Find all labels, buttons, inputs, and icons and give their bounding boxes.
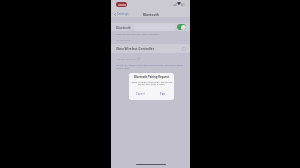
button[interactable]: Cancel	[129, 89, 151, 99]
staticText: OTHER DEVICES	[117, 57, 136, 60]
staticText: Cancel	[136, 92, 145, 96]
staticText: Now discoverable as "Tracy's iPhone".	[116, 32, 161, 35]
staticText: "Xbox Wireless Controller" would like to…	[129, 80, 174, 86]
button[interactable]: Back to Settings	[113, 11, 130, 17]
staticText: Bluetooth Pairing Request	[129, 75, 174, 79]
staticText: Bluetooth	[143, 13, 159, 17]
staticText: Xbox Wireless Controller	[116, 47, 155, 51]
staticText: To pair an Apple Watch with your iPhone,…	[116, 63, 183, 69]
button[interactable]: Device info	[182, 47, 186, 51]
staticText: Bluetooth	[116, 26, 132, 30]
staticText: Settings	[117, 12, 129, 16]
staticText: MY DEVICES	[116, 38, 131, 41]
staticText: Pair	[160, 92, 166, 96]
button[interactable]: Bluetooth	[111, 23, 190, 31]
button[interactable]: Pair	[151, 89, 174, 99]
button[interactable]: Xbox Wireless Controller	[111, 44, 190, 53]
